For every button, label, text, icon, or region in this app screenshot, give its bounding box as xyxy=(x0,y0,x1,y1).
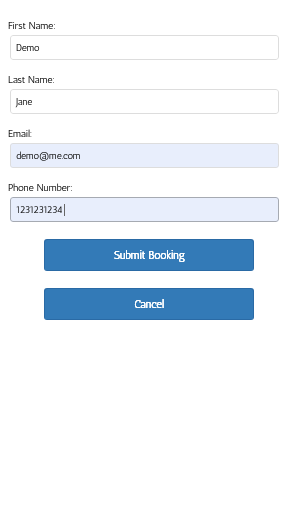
staticText: 1231231234 xyxy=(16,204,63,216)
staticText: Jane xyxy=(16,96,33,108)
staticText: demo@me.com xyxy=(16,150,81,162)
button[interactable]: Last Name input field xyxy=(10,89,279,114)
staticText: Phone Number: xyxy=(8,181,73,193)
staticText: First Name: xyxy=(8,19,56,31)
staticText: Cancel xyxy=(134,298,164,311)
staticText: Last Name: xyxy=(8,73,56,85)
staticText: First Name: xyxy=(8,19,56,31)
button[interactable]: Submit Booking xyxy=(44,239,254,271)
staticText: Jane xyxy=(16,96,33,108)
staticText: Email: xyxy=(8,127,33,139)
button[interactable]: Email input field xyxy=(10,143,279,168)
button[interactable]: Cancel xyxy=(44,288,254,320)
staticText: Cancel xyxy=(134,298,164,311)
staticText: 1231231234 xyxy=(16,204,63,216)
staticText: Phone Number: xyxy=(8,181,73,193)
staticText: Last Name: xyxy=(8,73,56,85)
staticText: Submit Booking xyxy=(114,249,185,262)
staticText: Email: xyxy=(8,127,33,139)
staticText: demo@me.com xyxy=(16,150,81,162)
staticText: Demo xyxy=(16,42,40,54)
staticText: Demo xyxy=(16,42,40,54)
button[interactable]: Phone Number input field xyxy=(10,197,279,222)
button[interactable]: First Name input field xyxy=(10,35,279,60)
staticText: Submit Booking xyxy=(114,249,185,262)
